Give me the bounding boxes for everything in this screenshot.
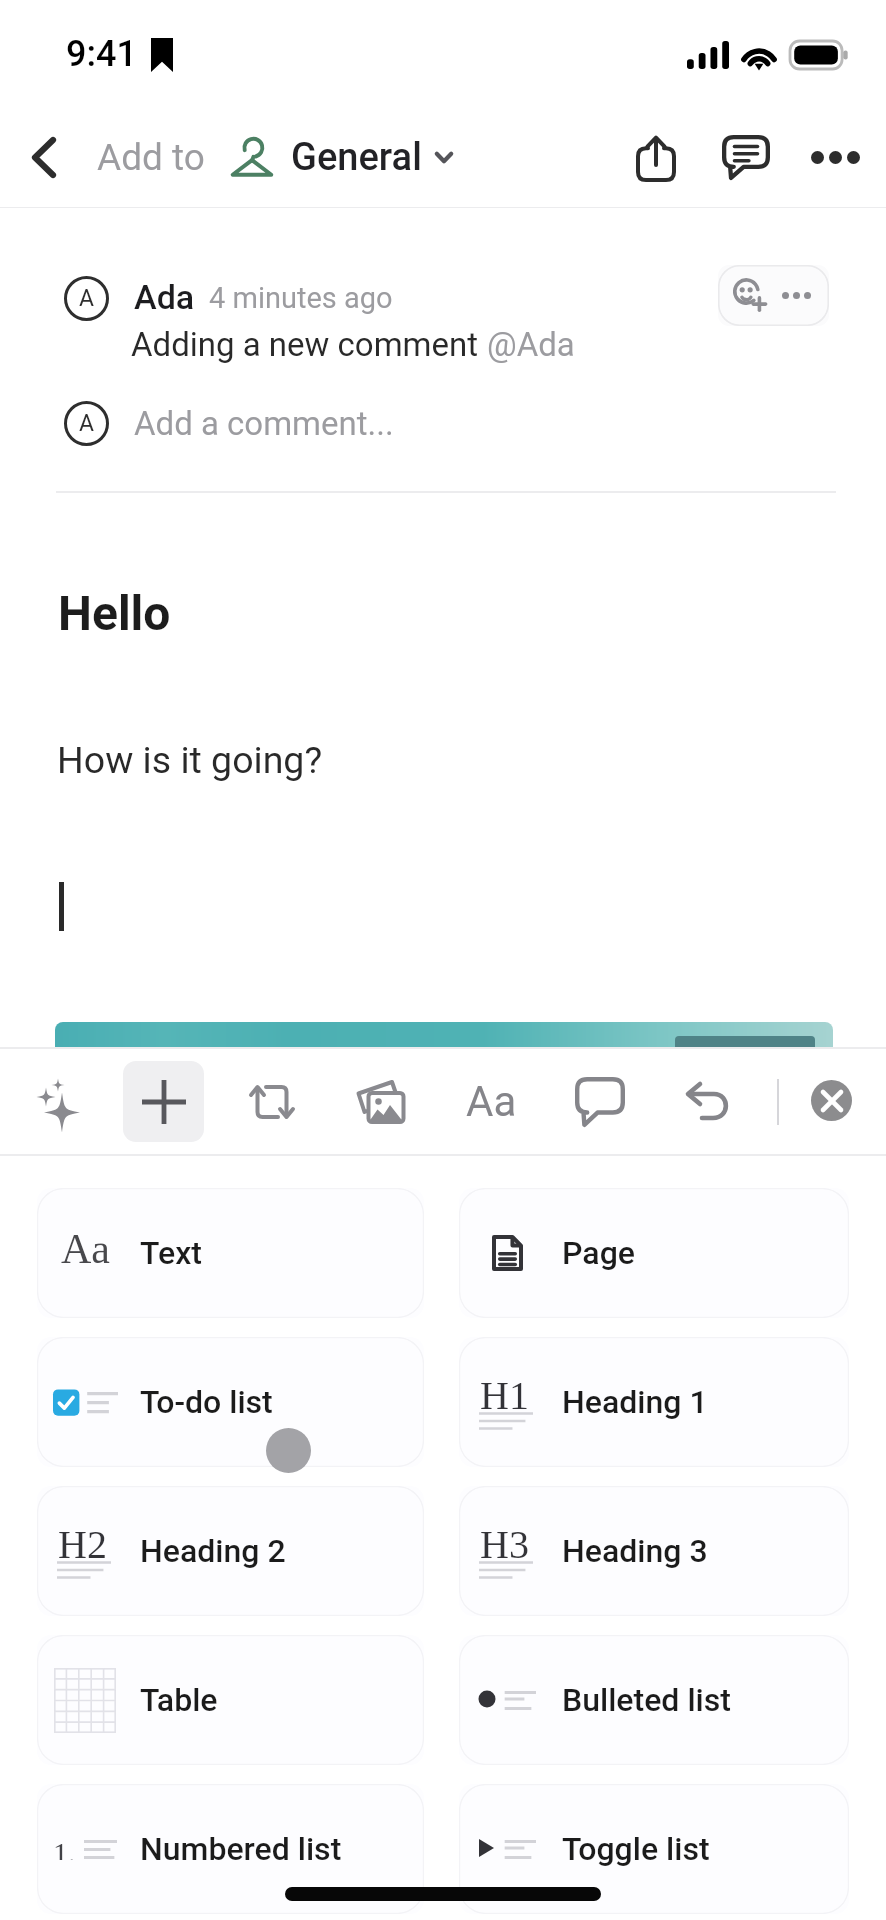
button[interactable]: 1. [37,1784,424,1914]
button[interactable]: Media [327,1047,435,1156]
staticText: Text [140,1234,202,1272]
button[interactable]: Aa [437,1047,545,1156]
button[interactable]: Insert block [123,1061,204,1142]
staticText: A [79,285,95,312]
button[interactable]: H1 [459,1337,849,1467]
staticText: Hello [58,585,171,641]
staticText: Heading 3 [562,1532,708,1570]
button[interactable]: Add to [97,108,467,207]
staticText: Toggle list [562,1830,710,1868]
staticText: 1. [53,1836,76,1860]
staticText: How is it going? [57,738,323,782]
staticText: Bulleted list [562,1681,731,1719]
button[interactable]: More options [790,108,880,207]
button[interactable]: Sync [218,1047,326,1156]
button[interactable]: A [0,398,886,448]
button[interactable]: Bulleted list [459,1635,849,1765]
staticText: Table [140,1681,218,1719]
staticText: Aa [466,1077,517,1126]
staticText: Page [562,1234,635,1272]
staticText: Numbered list [140,1830,342,1868]
staticText: A [79,410,95,437]
button[interactable]: Page [459,1188,849,1318]
button[interactable]: H3 [459,1486,849,1616]
button[interactable]: Share [613,108,699,207]
staticText: H1 [480,1373,529,1417]
button[interactable]: Toggle list [459,1784,849,1914]
staticText: Adding a new comment [131,325,487,364]
button[interactable]: To-do list [37,1337,424,1467]
staticText: 4 minutes ago [209,281,393,315]
button[interactable]: Magic [3,1047,111,1156]
button[interactable]: Aa [37,1188,424,1318]
staticText: Add a comment... [134,404,394,443]
staticText: General [291,135,422,180]
button[interactable]: Table [37,1635,424,1765]
staticText: H2 [58,1522,107,1566]
staticText: Ada [134,277,195,317]
staticText: Aa [61,1226,110,1273]
button[interactable]: Close [811,1080,852,1121]
staticText: Heading 2 [140,1532,286,1570]
staticText: Add to [97,136,205,179]
button[interactable]: Back [2,108,86,207]
button[interactable]: Undo [655,1047,763,1156]
staticText: H3 [480,1522,529,1566]
button[interactable]: Add reaction [718,265,829,326]
staticText: 9:41 [66,33,137,75]
staticText: @Ada [487,325,575,364]
button[interactable]: Comments [703,108,789,207]
staticText: Heading 1 [562,1383,708,1421]
button[interactable]: Comment [546,1047,654,1156]
staticText: To-do list [140,1383,273,1421]
button[interactable]: H2 [37,1486,424,1616]
